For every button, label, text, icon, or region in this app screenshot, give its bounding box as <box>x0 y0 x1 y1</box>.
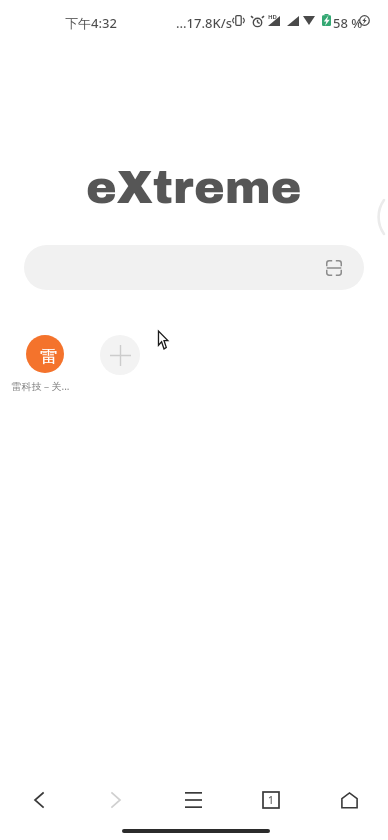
button[interactable]: Scan QR code <box>319 253 349 283</box>
staticText: ...17.8K/s <box>176 14 232 32</box>
button[interactable]: Home <box>310 778 388 822</box>
staticText: 雷科技－关... <box>11 379 70 393</box>
staticText: eXtreme <box>86 163 302 213</box>
staticText: 58 % <box>333 14 363 32</box>
button[interactable]: Forward <box>77 778 154 822</box>
button[interactable]: Scan QR code <box>24 245 364 290</box>
button[interactable]: Add shortcut <box>100 335 140 375</box>
staticText: 1 <box>268 793 274 807</box>
staticText: 雷 <box>40 346 57 367</box>
staticText: 下午4:32 <box>65 14 117 32</box>
staticText: HD <box>268 13 277 21</box>
button[interactable]: Back <box>0 778 77 822</box>
button[interactable]: 雷 <box>7 335 83 393</box>
button[interactable]: Menu <box>154 778 232 822</box>
button[interactable]: Tabs <box>232 778 310 822</box>
